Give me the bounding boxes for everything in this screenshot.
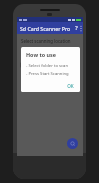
staticText: Select scanning location <box>21 38 71 44</box>
staticText: How to use <box>26 51 56 58</box>
button[interactable]: Help <box>71 23 81 33</box>
staticText: Sd Card Scanner Pro <box>20 25 71 32</box>
staticText: /storage/emulated/0/Agent <box>21 49 73 55</box>
button[interactable]: ignore update files outside of the speci… <box>21 62 79 67</box>
button[interactable]: /storage/emulated/0/Agent <box>21 49 79 55</box>
staticText: ? <box>75 24 78 32</box>
staticText: ignore update files outside of the speci… <box>27 62 79 67</box>
button[interactable]: Scan <box>67 138 78 149</box>
staticText: START SCANNING <box>32 74 68 80</box>
button[interactable]: OK <box>64 82 77 90</box>
staticText: - Press Start Scanning <box>26 71 69 77</box>
staticText: OK <box>67 83 74 89</box>
staticText: - Select folder to scan <box>26 63 69 69</box>
button[interactable]: START SCANNING <box>21 72 79 81</box>
